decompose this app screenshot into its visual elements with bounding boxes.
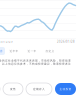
staticText: 近一年: [27, 49, 36, 53]
staticText: 定期存入: [33, 87, 45, 91]
button[interactable]: 近半年: [5, 47, 23, 55]
staticText: 基金的过往业绩不代表未来表现，市场有风险，投资须谨慎。以上信息仅供参考，不构成投…: [0, 59, 71, 69]
staticText: 2025/12/29: [0, 40, 13, 43]
staticText: 2026/01/28: [57, 40, 75, 43]
staticText: 近半年: [9, 49, 18, 53]
staticText: 近三个月: [0, 49, 3, 53]
button[interactable]: 发售: [3, 83, 23, 95]
button[interactable]: 自定义: [41, 47, 59, 55]
button[interactable]: 定期存入: [26, 83, 52, 95]
staticText: 发售: [10, 87, 16, 91]
staticText: 主动投资: [59, 87, 71, 91]
staticText: 自定义: [45, 49, 54, 53]
button[interactable]: 近三个月: [0, 47, 5, 55]
button[interactable]: 主动投资: [55, 83, 76, 95]
button[interactable]: 近一年: [23, 47, 41, 55]
